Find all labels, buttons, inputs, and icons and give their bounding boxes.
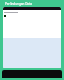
staticText: Perlindungan Data — [5, 2, 32, 6]
button[interactable]: Perlindungan Data — [0, 0, 64, 7]
